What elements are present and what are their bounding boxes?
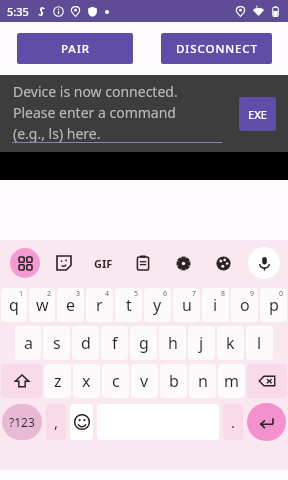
button[interactable]: x — [73, 364, 100, 398]
button[interactable]: y — [144, 288, 171, 322]
staticText: m — [224, 370, 239, 392]
button[interactable]: q — [1, 288, 27, 322]
button[interactable]: Enter — [247, 403, 286, 441]
button[interactable]: d — [72, 326, 99, 360]
staticText: 2 — [47, 289, 52, 299]
staticText: z — [54, 370, 62, 392]
staticText: a — [24, 332, 33, 354]
staticText: d — [81, 332, 91, 354]
staticText: 4 — [105, 289, 110, 299]
staticText: b — [169, 370, 179, 392]
button[interactable]: Emoji — [70, 404, 93, 440]
staticText: e — [66, 294, 76, 316]
staticText: c — [112, 370, 120, 392]
button[interactable]: Settings — [168, 248, 198, 278]
button[interactable]: GIF — [88, 248, 118, 278]
staticText: PAIR — [61, 41, 90, 57]
button[interactable]: g — [130, 326, 157, 360]
button[interactable]: n — [189, 364, 216, 398]
button[interactable]: s — [43, 326, 70, 360]
staticText: EXE — [248, 107, 267, 122]
staticText: y — [153, 294, 162, 316]
button[interactable]: EXE — [239, 97, 276, 131]
staticText: x — [82, 370, 91, 392]
staticText: n — [198, 370, 208, 392]
button[interactable]: Theme — [208, 248, 238, 278]
button[interactable]: b — [160, 364, 187, 398]
staticText: 0 — [279, 289, 284, 299]
staticText: t — [126, 294, 132, 316]
button[interactable]: a — [15, 326, 41, 360]
staticText: (e.g., ls) here. — [13, 124, 101, 143]
staticText: k — [226, 332, 235, 354]
staticText: f — [112, 332, 118, 354]
staticText: h — [168, 332, 178, 354]
button[interactable]: , — [46, 404, 66, 440]
staticText: p — [269, 294, 279, 316]
button[interactable]: m — [218, 364, 245, 398]
button[interactable]: l — [246, 326, 273, 360]
staticText: g — [139, 332, 149, 354]
button[interactable]: PAIR — [17, 33, 133, 64]
staticText: DISCONNECT — [176, 41, 258, 57]
button[interactable]: j — [188, 326, 215, 360]
button[interactable]: p — [260, 288, 287, 322]
button[interactable]: i — [202, 288, 229, 322]
staticText: s — [53, 332, 61, 354]
button[interactable]: e — [57, 288, 84, 322]
button[interactable]: u — [173, 288, 200, 322]
staticText: r — [96, 294, 103, 316]
staticText: u — [182, 294, 192, 316]
button[interactable]: w — [29, 288, 55, 322]
staticText: ?123 — [9, 414, 35, 430]
staticText: 9 — [250, 289, 255, 299]
button[interactable]: f — [101, 326, 128, 360]
button[interactable]: Sticker — [49, 248, 79, 278]
button[interactable]: c — [102, 364, 129, 398]
staticText: 5:35 — [7, 4, 29, 19]
button[interactable]: r — [86, 288, 113, 322]
button[interactable]: t — [115, 288, 142, 322]
staticText: 1 — [19, 289, 24, 299]
staticText: 5 — [134, 289, 139, 299]
button[interactable]: Clipboard — [128, 248, 158, 278]
staticText: Device is now connected. — [13, 82, 178, 101]
button[interactable]: h — [159, 326, 186, 360]
staticText: 7 — [192, 289, 197, 299]
staticText: w — [36, 294, 49, 316]
button[interactable]: z — [44, 364, 71, 398]
staticText: GIF — [94, 256, 113, 271]
staticText: i — [213, 294, 218, 316]
staticText: l — [257, 332, 262, 354]
staticText: q — [9, 294, 19, 316]
staticText: . — [231, 412, 236, 432]
staticText: 3 — [76, 289, 81, 299]
button[interactable]: Shift — [1, 364, 42, 398]
staticText: 6 — [163, 289, 168, 299]
button[interactable]: v — [131, 364, 158, 398]
button[interactable]: Backspace — [247, 364, 287, 398]
staticText: o — [240, 294, 250, 316]
button[interactable]: Voice input — [248, 247, 280, 279]
staticText: 8 — [221, 289, 226, 299]
staticText: , — [54, 412, 59, 432]
staticText: Please enter a command — [13, 103, 176, 122]
button[interactable]: o — [231, 288, 258, 322]
button[interactable]: k — [217, 326, 244, 360]
button[interactable]: ?123 — [2, 404, 42, 440]
button[interactable]: . — [223, 404, 243, 440]
button[interactable]: DISCONNECT — [161, 33, 272, 64]
staticText: j — [199, 332, 204, 354]
staticText: v — [140, 370, 149, 392]
button[interactable]: Apps — [10, 248, 40, 278]
